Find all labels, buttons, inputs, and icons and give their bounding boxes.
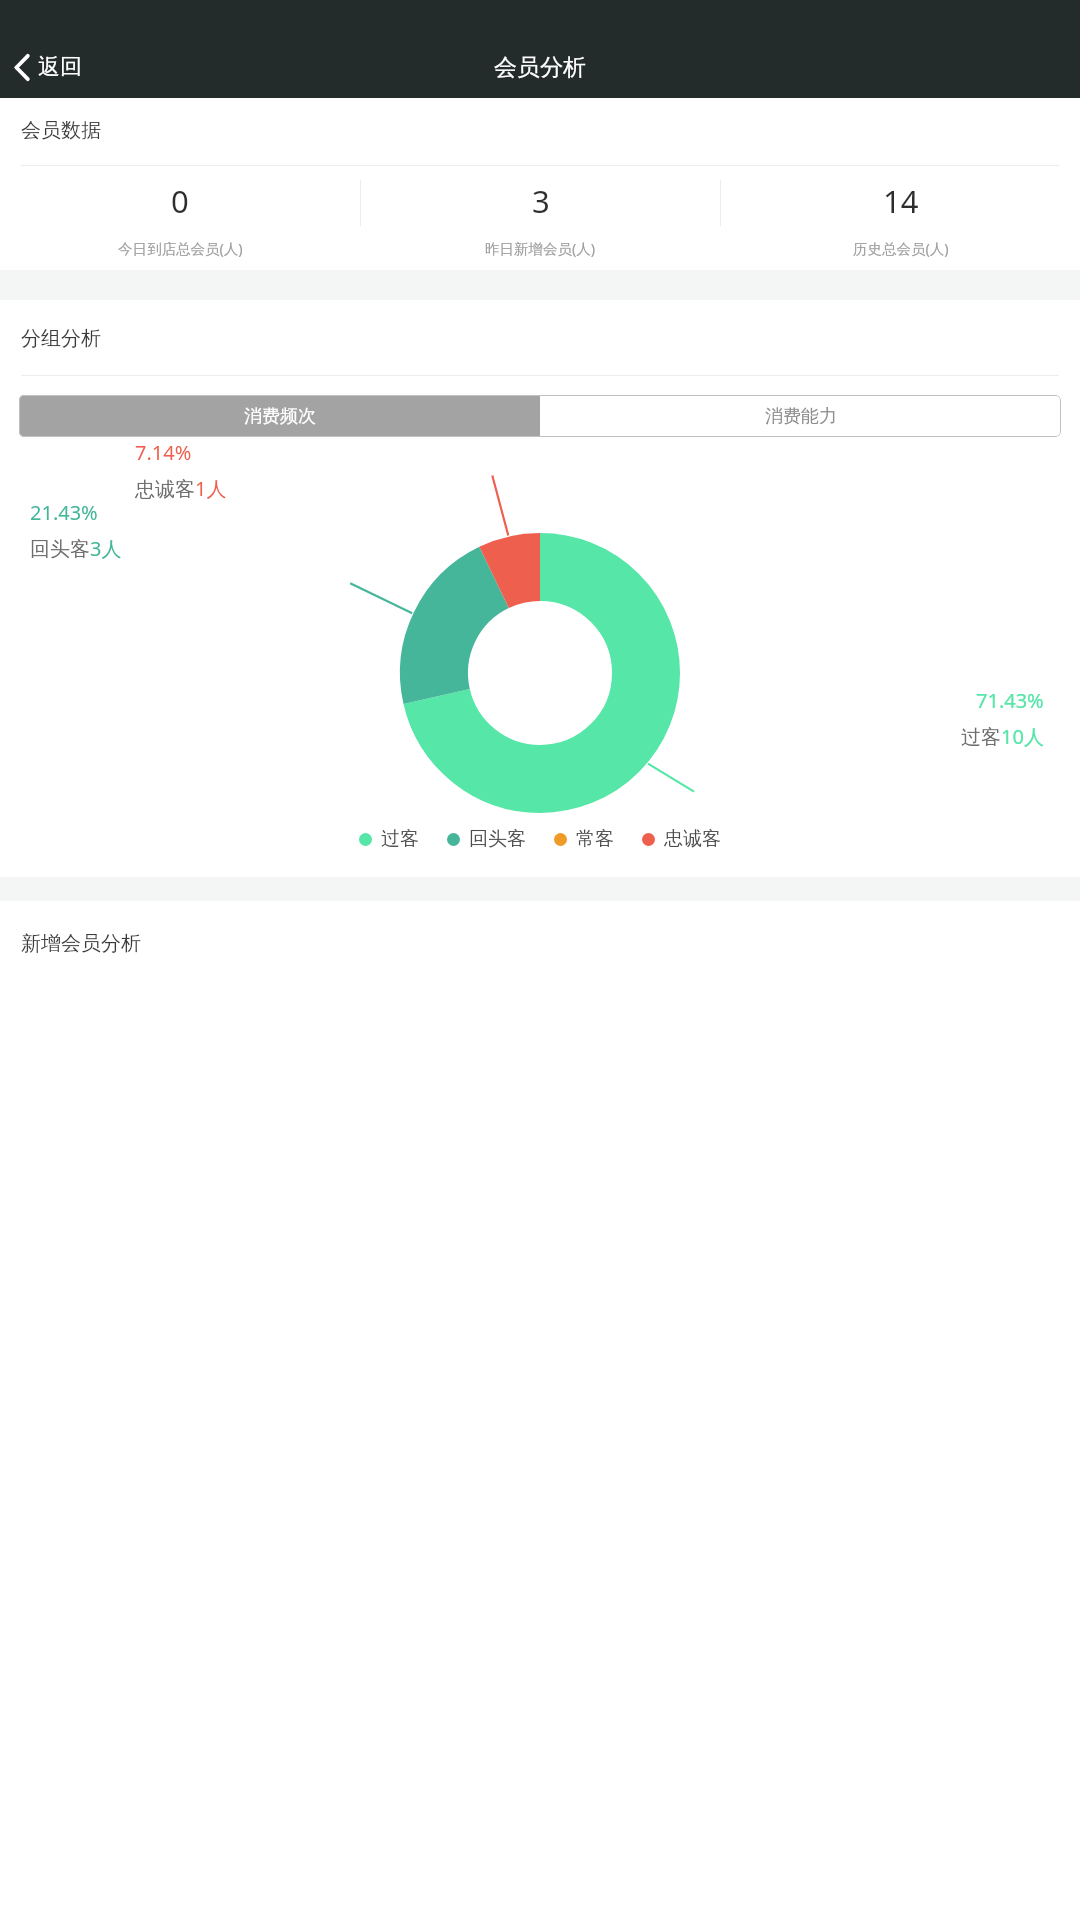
staticText: 7.14% <box>135 439 192 466</box>
staticText: 回头客 <box>469 827 526 851</box>
button[interactable]: 忠诚客 <box>642 827 721 851</box>
staticText: 忠诚客1人 <box>135 475 227 502</box>
staticText: 14 <box>883 180 919 222</box>
staticText: 会员数据 <box>21 118 101 143</box>
staticText: 71.43% <box>976 687 1044 714</box>
staticText: 过客 <box>381 827 419 851</box>
button[interactable]: 回头客 <box>447 827 526 851</box>
staticText: 忠诚客 <box>664 827 721 851</box>
button[interactable]: 消费能力 <box>540 395 1061 437</box>
staticText: 常客 <box>576 827 614 851</box>
button[interactable]: 返回 <box>0 36 96 98</box>
staticText: 回头客3人 <box>30 535 122 562</box>
button[interactable]: 消费频次 <box>19 395 540 437</box>
staticText: 过客10人 <box>961 723 1044 750</box>
staticText: 昨日新增会员(人) <box>485 238 596 258</box>
staticText: 今日到店总会员(人) <box>118 238 243 258</box>
staticText: 会员分析 <box>494 53 586 82</box>
staticText: 21.43% <box>30 499 98 526</box>
staticText: 历史总会员(人) <box>853 238 949 258</box>
staticText: 分组分析 <box>21 326 101 351</box>
staticText: 新增会员分析 <box>21 931 141 956</box>
staticText: 3 <box>532 180 550 222</box>
button[interactable]: 过客 <box>359 827 419 851</box>
staticText: 消费能力 <box>765 405 837 428</box>
staticText: 消费频次 <box>244 405 316 428</box>
button[interactable]: 常客 <box>554 827 614 851</box>
staticText: 返回 <box>38 53 82 81</box>
staticText: 0 <box>171 180 189 222</box>
